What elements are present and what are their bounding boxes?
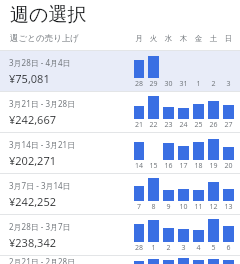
staticText: 13 xyxy=(223,202,234,212)
staticText: 火 xyxy=(148,34,159,43)
button[interactable]: 3月21日 - 3月28日 xyxy=(0,92,240,132)
staticText: 5 xyxy=(208,243,219,253)
staticText: 4 xyxy=(193,243,204,253)
staticText: 土 xyxy=(208,34,219,43)
staticText: 22 xyxy=(148,120,159,130)
staticText: ¥202,271 xyxy=(9,153,56,168)
staticText: 3月21日 - 3月28日 xyxy=(9,98,76,109)
staticText: 1 xyxy=(193,79,204,89)
button[interactable]: 3月7日 - 3月14日 xyxy=(0,174,240,214)
staticText: 17 xyxy=(178,161,189,171)
staticText: 週ごとの売り上げ xyxy=(10,33,79,44)
staticText: 3月28日 - 4月4日 xyxy=(9,57,71,68)
staticText: 3 xyxy=(223,79,234,89)
staticText: 29 xyxy=(148,79,159,89)
button[interactable]: 3月28日 - 4月4日 xyxy=(0,51,240,91)
staticText: ¥238,342 xyxy=(9,235,56,250)
staticText: 12 xyxy=(208,202,219,212)
staticText: 9 xyxy=(163,202,174,212)
staticText: 27 xyxy=(223,120,234,130)
staticText: 15 xyxy=(148,161,159,171)
staticText: 19 xyxy=(208,161,219,171)
button[interactable]: 3月14日 - 3月21日 xyxy=(0,133,240,173)
staticText: 木 xyxy=(178,34,189,43)
staticText: 3 xyxy=(178,243,189,253)
staticText: 水 xyxy=(163,34,174,43)
staticText: 26 xyxy=(208,120,219,130)
staticText: ¥75,081 xyxy=(9,71,50,86)
staticText: 6 xyxy=(223,243,234,253)
staticText: 14 xyxy=(134,161,144,171)
staticText: 16 xyxy=(163,161,174,171)
staticText: 2月28日 - 3月7日 xyxy=(9,221,71,232)
staticText: 7 xyxy=(134,202,144,212)
staticText: 21 xyxy=(134,120,144,130)
button[interactable]: 2月28日 - 3月7日 xyxy=(0,215,240,255)
staticText: 月 xyxy=(134,34,144,43)
staticText: 28 xyxy=(134,79,144,89)
staticText: 28 xyxy=(134,243,144,253)
staticText: 週の選択 xyxy=(10,3,87,27)
staticText: 18 xyxy=(193,161,204,171)
staticText: 30 xyxy=(163,79,174,89)
staticText: 3月7日 - 3月14日 xyxy=(9,180,71,191)
staticText: 2月21日 - 2月28日 xyxy=(9,256,76,264)
staticText: 金 xyxy=(193,34,204,43)
staticText: 25 xyxy=(193,120,204,130)
staticText: 2 xyxy=(163,243,174,253)
staticText: 日 xyxy=(223,34,234,43)
staticText: 20 xyxy=(223,161,234,171)
staticText: 10 xyxy=(178,202,189,212)
button[interactable]: 2月21日 - 2月28日 xyxy=(0,256,240,264)
staticText: 24 xyxy=(178,120,189,130)
staticText: 8 xyxy=(148,202,159,212)
staticText: 11 xyxy=(193,202,204,212)
staticText: 31 xyxy=(178,79,189,89)
staticText: ¥242,667 xyxy=(9,112,56,127)
staticText: 3月14日 - 3月21日 xyxy=(9,139,76,150)
staticText: 2 xyxy=(208,79,219,89)
staticText: ¥242,252 xyxy=(9,194,56,209)
staticText: 1 xyxy=(148,243,159,253)
staticText: 23 xyxy=(163,120,174,130)
